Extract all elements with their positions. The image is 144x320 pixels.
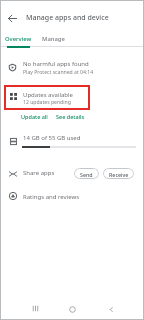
button[interactable]: Back bbox=[4, 10, 21, 27]
staticText: Update all bbox=[21, 113, 48, 120]
staticText: Updates available bbox=[23, 91, 73, 99]
button[interactable]: Back bbox=[102, 300, 120, 318]
button[interactable]: Ratings and reviews bbox=[0, 188, 144, 205]
staticText: Share apps bbox=[23, 169, 55, 177]
staticText: See details bbox=[56, 113, 85, 120]
button[interactable]: Send bbox=[74, 168, 99, 179]
staticText: Overview bbox=[5, 35, 32, 43]
staticText: No harmful apps found bbox=[23, 60, 89, 68]
staticText: Manage apps and device bbox=[26, 13, 109, 23]
button[interactable]: Overview bbox=[0, 30, 36, 46]
button[interactable]: Receive bbox=[103, 168, 134, 179]
button[interactable]: 14 GB of 55 GB used bbox=[0, 132, 144, 152]
button[interactable]: Manage bbox=[38, 30, 68, 46]
staticText: Play Protect scanned at 04:14 bbox=[23, 69, 94, 76]
button[interactable]: Update all bbox=[21, 110, 48, 120]
button[interactable]: Recent apps bbox=[26, 299, 44, 317]
staticText: Ratings and reviews bbox=[23, 193, 80, 201]
staticText: Receive bbox=[109, 171, 129, 178]
staticText: 12 updates pending bbox=[23, 99, 71, 106]
button[interactable]: See details bbox=[56, 110, 85, 120]
staticText: Manage bbox=[42, 35, 65, 43]
button[interactable]: Home bbox=[63, 300, 81, 318]
staticText: 14 GB of 55 GB used bbox=[23, 134, 81, 142]
staticText: Send bbox=[80, 171, 93, 178]
button[interactable]: Updates available bbox=[0, 86, 144, 108]
button[interactable]: No harmful apps found bbox=[0, 56, 144, 78]
